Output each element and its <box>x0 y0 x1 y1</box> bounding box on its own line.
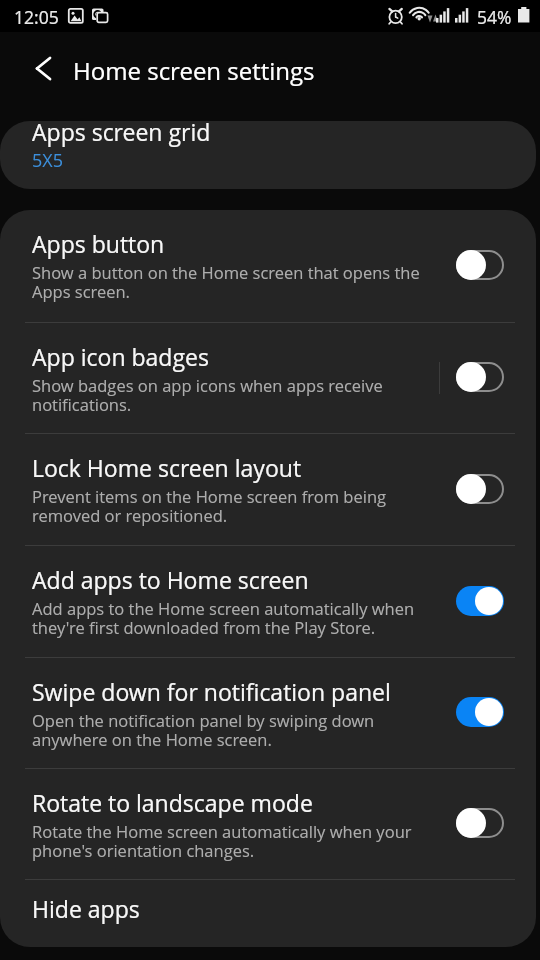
button[interactable]: Lock Home screen layout <box>0 434 440 545</box>
staticText: 54% <box>477 5 512 29</box>
button[interactable]: Apps screen grid <box>0 121 536 189</box>
staticText: Hide apps <box>32 893 140 924</box>
button[interactable]: Rotate to landscape mode <box>0 769 440 879</box>
staticText: Swipe down for notification panel <box>32 676 391 707</box>
staticText: Apps button <box>32 228 165 259</box>
staticText: Show a button on the Home screen that op… <box>32 261 420 303</box>
staticText: Rotate to landscape mode <box>32 787 313 818</box>
button[interactable]: Switch on <box>456 697 504 727</box>
staticText: 12:05 <box>14 5 59 29</box>
button[interactable]: Switch off <box>456 250 504 280</box>
button[interactable]: Hide apps <box>0 880 536 947</box>
staticText: Add apps to the Home screen automaticall… <box>32 597 415 639</box>
staticText: 5X5 <box>32 148 63 173</box>
staticText: Apps screen grid <box>32 121 211 147</box>
staticText: Add apps to Home screen <box>32 564 309 595</box>
staticText: Home screen settings <box>73 54 315 87</box>
staticText: Lock Home screen layout <box>32 452 302 483</box>
staticText: Open the notification panel by swiping d… <box>32 709 375 751</box>
staticText: App icon badges <box>32 341 209 372</box>
button[interactable]: Swipe down for notification panel <box>0 658 440 768</box>
button[interactable]: Switch on <box>456 586 504 616</box>
button[interactable]: Add apps to Home screen <box>0 546 440 657</box>
button[interactable]: Switch off <box>456 362 504 392</box>
button[interactable]: Apps button <box>0 210 440 322</box>
staticText: Prevent items on the Home screen from be… <box>32 485 387 527</box>
button[interactable]: Back <box>25 49 63 87</box>
button[interactable]: App icon badges <box>0 323 439 433</box>
staticText: Rotate the Home screen automatically whe… <box>32 820 412 862</box>
button[interactable]: Switch off <box>456 474 504 504</box>
staticText: Show badges on app icons when apps recei… <box>32 374 383 416</box>
button[interactable]: Switch off <box>456 808 504 838</box>
